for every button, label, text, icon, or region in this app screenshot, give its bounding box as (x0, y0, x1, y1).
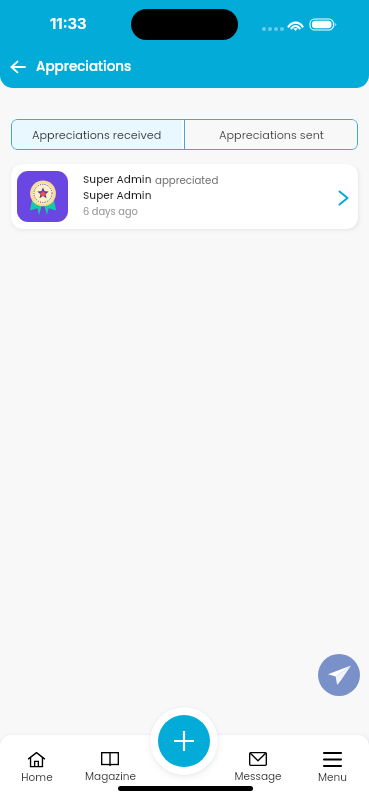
staticText: Home (21, 770, 53, 785)
button[interactable]: Add (158, 715, 210, 767)
staticText: Magazine (85, 769, 136, 784)
button[interactable]: Send message (318, 654, 360, 696)
staticText: Super Admin (83, 172, 155, 187)
button[interactable]: Back (4, 53, 32, 81)
staticText: Appreciations received (32, 127, 162, 143)
button[interactable]: Super Admin (11, 164, 358, 229)
staticText: Message (234, 769, 282, 784)
button[interactable]: Menu (295, 735, 369, 800)
staticText: Appreciations sent (219, 127, 324, 143)
button[interactable]: Message (221, 735, 295, 800)
staticText: Super Admin (83, 188, 152, 203)
button[interactable]: Magazine (73, 735, 147, 800)
staticText: Menu (318, 770, 347, 785)
staticText: appreciated (155, 173, 219, 187)
staticText: Appreciations (36, 57, 132, 76)
staticText: 11:33 (50, 14, 87, 32)
button[interactable]: Home (0, 735, 73, 800)
button[interactable]: Appreciations received (11, 119, 182, 150)
staticText: 6 days ago (83, 205, 138, 219)
button[interactable]: Appreciations sent (185, 119, 358, 150)
